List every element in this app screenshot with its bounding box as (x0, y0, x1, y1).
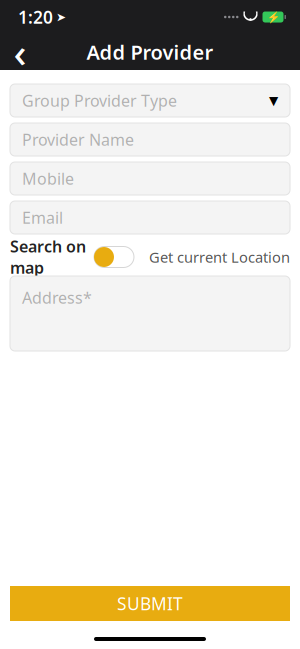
button[interactable]: Email (10, 201, 290, 234)
staticText: Mobile (22, 168, 74, 189)
staticText: Get current Location (149, 247, 290, 267)
staticText: Email (22, 207, 63, 228)
staticText: Group Provider Type (22, 90, 177, 111)
staticText: Search on map (10, 236, 86, 278)
staticText: Provider Name (22, 129, 134, 150)
button[interactable]: Address* (10, 276, 290, 351)
staticText: Add Provider (86, 39, 213, 65)
staticText: ⚡ (266, 11, 279, 23)
staticText: ‹ (13, 25, 26, 78)
staticText: SUBMIT (117, 592, 183, 615)
button[interactable]: Group Provider Type (10, 84, 290, 117)
button[interactable]: Provider Name (10, 123, 290, 156)
button[interactable]: Mobile (10, 162, 290, 195)
staticText: 1:20 (18, 5, 53, 28)
staticText: Address* (22, 287, 92, 308)
button[interactable]: Get current Location (149, 247, 290, 267)
button[interactable]: Search on map toggle (86, 245, 134, 269)
staticText: ▼ (269, 94, 278, 107)
staticText: ➤ (56, 10, 66, 24)
button[interactable]: SUBMIT (10, 586, 290, 621)
button[interactable]: Back (0, 34, 40, 70)
